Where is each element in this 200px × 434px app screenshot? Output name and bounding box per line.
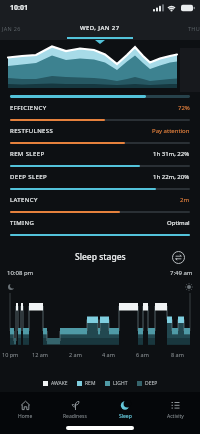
- button[interactable]: LATENCY: [0, 190, 200, 213]
- button[interactable]: RESTFULNESS: [0, 121, 200, 144]
- staticText: 10:01: [10, 3, 28, 13]
- staticText: THU, JAN: [188, 25, 200, 32]
- staticText: 8 am: [171, 351, 184, 358]
- staticText: 12 am: [32, 351, 48, 358]
- staticText: REM: [85, 380, 96, 387]
- staticText: DEEP SLEEP: [10, 173, 47, 181]
- button[interactable]: [172, 251, 185, 264]
- staticText: Sleep stages: [75, 251, 126, 263]
- staticText: 10 pm: [2, 351, 19, 358]
- staticText: RESTFULNESS: [10, 127, 54, 135]
- button[interactable]: TIMING: [0, 213, 200, 236]
- staticText: Home: [18, 413, 33, 420]
- staticText: LIGHT: [113, 380, 128, 387]
- staticText: Readiness: [63, 413, 87, 420]
- staticText: JAN 26: [2, 25, 21, 32]
- staticText: 10:08 pm: [7, 269, 34, 277]
- staticText: WED, JAN 27: [80, 24, 120, 32]
- staticText: 7:49 am: [170, 269, 193, 277]
- staticText: 72%: [178, 104, 190, 112]
- button[interactable]: EFFICIENCY: [0, 98, 200, 121]
- staticText: Activity: [167, 413, 184, 420]
- button[interactable]: Activity: [150, 400, 200, 420]
- staticText: 2m: [180, 196, 190, 204]
- staticText: Optimal: [167, 219, 190, 227]
- staticText: REM SLEEP: [10, 150, 45, 158]
- staticText: Pay attention: [152, 127, 190, 135]
- button[interactable]: Sleep: [100, 400, 150, 420]
- staticText: AWAKE: [51, 380, 68, 387]
- staticText: 4 am: [102, 351, 115, 358]
- staticText: TIMING: [10, 219, 35, 227]
- staticText: LATENCY: [10, 196, 38, 204]
- button[interactable]: Readiness: [50, 400, 100, 420]
- staticText: 1h 22m, 20%: [153, 173, 190, 181]
- button[interactable]: REM SLEEP: [0, 144, 200, 167]
- staticText: DEEP: [145, 380, 158, 387]
- staticText: 1h 31m, 22%: [153, 150, 190, 158]
- staticText: 2 am: [69, 351, 82, 358]
- button[interactable]: DEEP SLEEP: [0, 167, 200, 190]
- button[interactable]: WED, JAN 27: [80, 24, 120, 32]
- staticText: EFFICIENCY: [10, 104, 47, 112]
- button[interactable]: Home: [0, 400, 50, 420]
- staticText: 6 am: [136, 351, 149, 358]
- staticText: Sleep: [119, 413, 132, 420]
